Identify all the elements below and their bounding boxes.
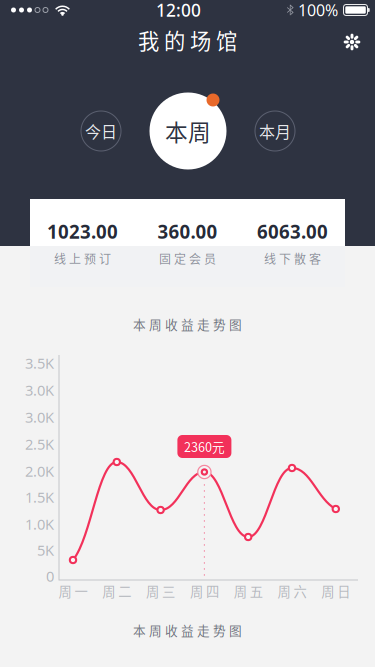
staticText: 3.0K	[25, 407, 54, 427]
staticText: 本周	[165, 115, 211, 147]
staticText: 6063.00	[257, 219, 328, 244]
staticText: 线 上 预 订	[54, 250, 111, 267]
staticText: 1023.00	[47, 219, 118, 244]
staticText: 360.00	[157, 219, 217, 244]
staticText: 3.0K	[25, 380, 54, 400]
staticText: 本 周 收 益 走 势 图	[133, 621, 242, 639]
button[interactable]: 本周	[149, 92, 226, 169]
staticText: 线 下 散 客	[264, 250, 321, 267]
staticText: 今日	[85, 119, 117, 143]
staticText: 100%	[298, 0, 338, 21]
staticText: 周 六	[277, 581, 306, 601]
staticText: 2.0K	[25, 461, 54, 481]
button[interactable]: 今日	[81, 111, 121, 151]
staticText: 5K	[37, 540, 54, 560]
staticText: 1.5K	[25, 487, 54, 507]
staticText: 本 周 收 益 走 势 图	[133, 315, 242, 333]
staticText: 2360元	[184, 437, 225, 456]
staticText: 周 四	[190, 581, 219, 601]
staticText: 12:00	[156, 0, 201, 21]
staticText: 本月	[259, 119, 291, 143]
staticText: 周 日	[321, 581, 350, 601]
staticText: 我 的 场 馆	[138, 25, 237, 55]
button[interactable]: Settings	[343, 31, 375, 49]
staticText: 1.0K	[25, 514, 54, 534]
staticText: 3.5K	[25, 353, 54, 373]
button[interactable]: 本月	[255, 111, 295, 151]
staticText: 2.5K	[25, 434, 54, 454]
staticText: 固 定 会 员	[159, 250, 216, 267]
staticText: 周 二	[102, 581, 131, 601]
staticText: 周 五	[234, 581, 263, 601]
staticText: 周 一	[58, 581, 87, 601]
staticText: 周 三	[146, 581, 175, 601]
staticText: 0	[46, 566, 54, 586]
